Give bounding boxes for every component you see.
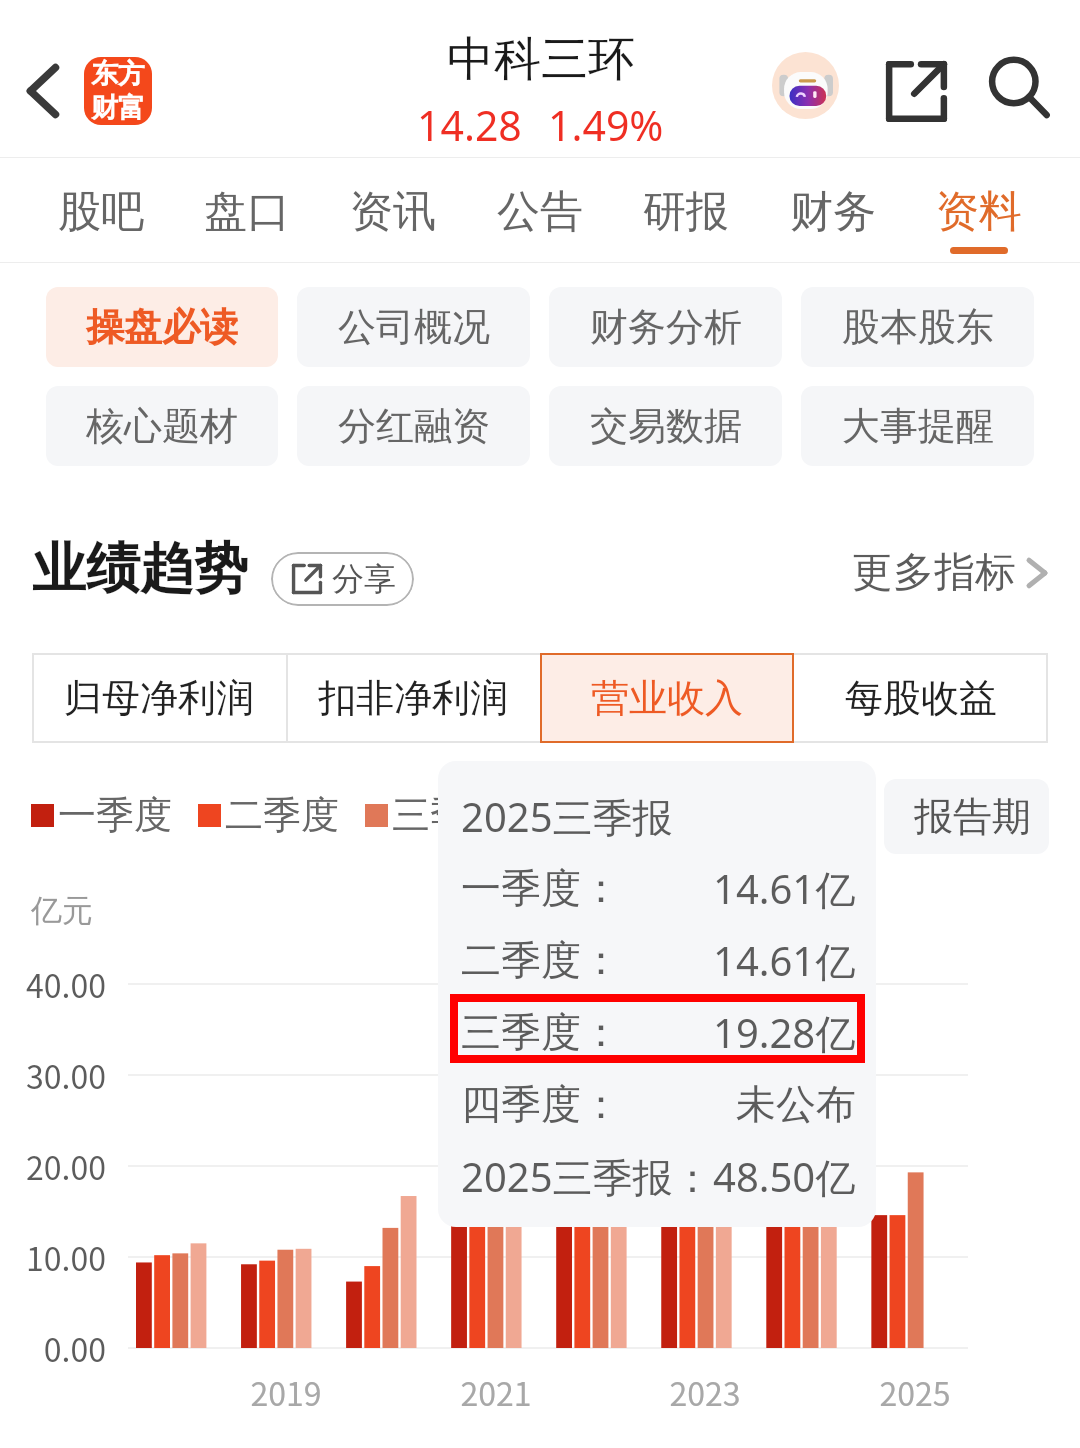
staticText: 14.28	[417, 97, 522, 153]
staticText: 归母净利润	[64, 674, 254, 722]
staticText: 东方	[91, 57, 145, 91]
staticText: 资讯	[350, 185, 436, 239]
staticText: 未公布	[736, 1079, 856, 1129]
staticText: 每股收益	[845, 674, 997, 722]
staticText: 一季度	[58, 791, 172, 839]
staticText: 三季度	[392, 791, 506, 839]
button[interactable]: 分享	[271, 552, 414, 606]
staticText: 股吧	[58, 185, 144, 239]
staticText: 二季度	[225, 791, 339, 839]
staticText: 财务	[790, 185, 876, 239]
button[interactable]: Search	[976, 45, 1064, 133]
button[interactable]: 归母净利润	[32, 653, 286, 743]
staticText: 14.61亿	[713, 933, 856, 988]
staticText: 2023	[669, 1369, 741, 1415]
button[interactable]: 分红融资	[297, 386, 530, 466]
button[interactable]: 研报	[625, 158, 747, 262]
button[interactable]: 交易数据	[549, 386, 782, 466]
staticText: 盘口	[204, 185, 290, 239]
staticText: 四季度：	[461, 1079, 621, 1129]
button[interactable]: EastMoney	[84, 57, 152, 125]
button[interactable]: 盘口	[186, 158, 308, 262]
staticText: 更多指标	[852, 547, 1016, 599]
staticText: 分享	[332, 559, 396, 599]
staticText: 0.00	[43, 1325, 106, 1371]
staticText: 2019	[250, 1369, 322, 1415]
staticText: 一季度：	[461, 863, 621, 913]
button[interactable]: 股吧	[40, 158, 162, 262]
button[interactable]: 操盘必读	[46, 287, 278, 367]
button[interactable]: 营业收入	[540, 653, 794, 743]
staticText: 四季度	[559, 791, 673, 839]
staticText: 研报	[643, 185, 729, 239]
staticText: 股本股东	[842, 303, 994, 351]
staticText: 2021	[460, 1369, 532, 1415]
button[interactable]: Back	[0, 48, 86, 134]
staticText: 40.00	[26, 961, 106, 1007]
staticText: 19.28亿	[713, 1005, 856, 1060]
staticText: 2025三季报	[461, 789, 673, 844]
staticText: 二季度：	[461, 935, 621, 985]
staticText: 核心题材	[86, 402, 238, 450]
button[interactable]: Share	[872, 47, 960, 135]
button[interactable]: 大事提醒	[801, 386, 1034, 466]
staticText: 30.00	[26, 1052, 106, 1098]
staticText: 14.61亿	[713, 861, 856, 916]
staticText: 公司概况	[338, 303, 490, 351]
staticText: 1.49%	[548, 97, 664, 153]
staticText: 资料	[936, 185, 1022, 239]
staticText: 48.50亿	[713, 1149, 856, 1204]
button[interactable]: 扣非净利润	[286, 653, 540, 743]
staticText: 财富	[91, 91, 145, 125]
staticText: 公告	[497, 185, 583, 239]
staticText: 分红融资	[338, 402, 490, 450]
staticText: 20.00	[26, 1143, 106, 1189]
staticText: 财务分析	[590, 303, 742, 351]
staticText: 业绩趋势	[32, 535, 248, 603]
button[interactable]: 股本股东	[801, 287, 1034, 367]
staticText: 报告期	[914, 792, 1031, 841]
staticText: 营业收入	[591, 674, 743, 722]
button[interactable]: 核心题材	[46, 386, 278, 466]
button[interactable]: AI assistant	[772, 52, 839, 119]
staticText: 交易数据	[590, 402, 742, 450]
button[interactable]: 更多指标	[852, 547, 1048, 599]
button[interactable]: 资讯	[332, 158, 454, 262]
staticText: 亿元	[31, 891, 93, 930]
staticText: 10.00	[26, 1234, 106, 1280]
staticText: 操盘必读	[86, 303, 238, 351]
button[interactable]: 财务分析	[549, 287, 782, 367]
staticText: 中科三环	[447, 30, 635, 89]
staticText: 扣非净利润	[318, 674, 508, 722]
button[interactable]: 财务	[772, 158, 894, 262]
button[interactable]: 资料	[918, 158, 1040, 262]
staticText: 2025	[879, 1369, 951, 1415]
staticText: 大事提醒	[842, 402, 994, 450]
button[interactable]: 报告期	[884, 779, 1049, 854]
button[interactable]: 每股收益	[794, 653, 1048, 743]
button[interactable]: 公告	[479, 158, 601, 262]
staticText: 三季度：	[461, 1007, 621, 1057]
staticText: 2025三季报：	[461, 1149, 713, 1204]
button[interactable]: 公司概况	[297, 287, 530, 367]
